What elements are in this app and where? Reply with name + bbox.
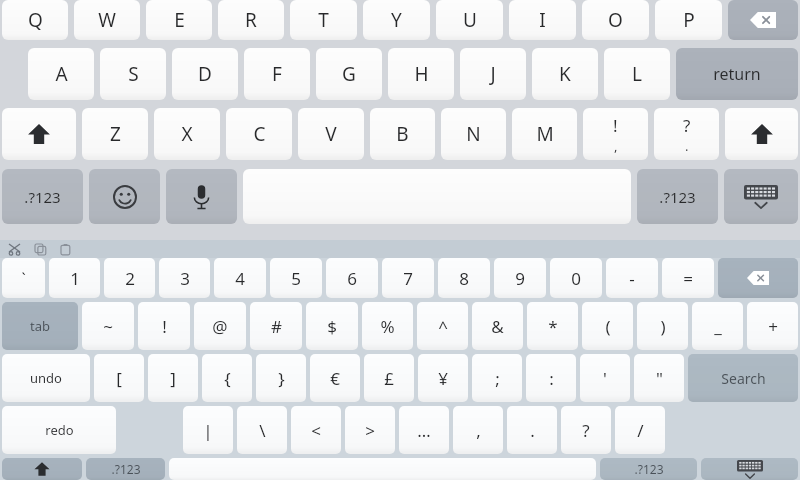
button[interactable]: T — [290, 0, 357, 40]
button[interactable]: C — [226, 108, 292, 160]
button[interactable]: * — [527, 302, 578, 350]
button[interactable]: … — [399, 406, 449, 454]
button[interactable]: / — [615, 406, 665, 454]
staticText: 4 — [235, 267, 245, 290]
button[interactable]: redo — [2, 406, 116, 454]
button[interactable]: 6 — [326, 258, 378, 298]
button[interactable]: ! — [583, 108, 648, 160]
button[interactable]: # — [250, 302, 302, 350]
button[interactable]: Copy — [32, 241, 48, 257]
button[interactable]: 1 — [49, 258, 100, 298]
button[interactable]: ? — [654, 108, 719, 160]
button[interactable]: ! — [138, 302, 190, 350]
button[interactable]: ] — [148, 354, 198, 402]
button[interactable]: > — [345, 406, 395, 454]
button[interactable]: return — [676, 48, 798, 100]
button[interactable]: € — [310, 354, 360, 402]
button[interactable]: I — [509, 0, 576, 40]
button[interactable]: P — [655, 0, 722, 40]
button[interactable]: Hide keyboard — [724, 169, 798, 224]
button[interactable]: O — [582, 0, 649, 40]
button[interactable]: G — [316, 48, 382, 100]
button[interactable]: : — [526, 354, 576, 402]
button[interactable]: £ — [364, 354, 414, 402]
button[interactable]: D — [172, 48, 238, 100]
button[interactable]: Z — [82, 108, 148, 160]
button[interactable]: Space — [243, 169, 631, 224]
button[interactable]: Q — [2, 0, 68, 40]
button[interactable]: % — [362, 302, 413, 350]
button[interactable]: { — [202, 354, 252, 402]
button[interactable]: Shift — [2, 108, 76, 160]
button[interactable]: A — [28, 48, 94, 100]
button[interactable]: - — [606, 258, 658, 298]
button[interactable]: 2 — [104, 258, 155, 298]
button[interactable]: X — [154, 108, 220, 160]
button[interactable]: L — [604, 48, 670, 100]
button[interactable]: ^ — [417, 302, 468, 350]
button[interactable]: .?123 — [86, 458, 165, 480]
button[interactable]: Shift — [725, 108, 798, 160]
button[interactable]: ` — [2, 258, 45, 298]
button[interactable]: + — [747, 302, 798, 350]
button[interactable]: ; — [472, 354, 522, 402]
button[interactable]: 3 — [159, 258, 210, 298]
button[interactable]: .?123 — [600, 458, 697, 480]
button[interactable]: S — [100, 48, 166, 100]
button[interactable]: undo — [2, 354, 90, 402]
button[interactable]: Hide keyboard — [701, 458, 798, 480]
button[interactable]: F — [244, 48, 310, 100]
button[interactable]: 9 — [494, 258, 546, 298]
button[interactable]: ~ — [82, 302, 134, 350]
button[interactable]: ) — [637, 302, 688, 350]
button[interactable]: _ — [692, 302, 743, 350]
button[interactable]: ' — [580, 354, 630, 402]
button[interactable]: \ — [237, 406, 287, 454]
button[interactable]: U — [436, 0, 503, 40]
button[interactable]: ( — [582, 302, 633, 350]
staticText: ' — [603, 367, 607, 390]
button[interactable]: .?123 — [2, 169, 83, 224]
button[interactable]: M — [512, 108, 577, 160]
button[interactable]: , — [453, 406, 503, 454]
button[interactable]: 8 — [438, 258, 490, 298]
button[interactable]: @ — [194, 302, 246, 350]
button[interactable]: H — [388, 48, 454, 100]
button[interactable]: V — [298, 108, 364, 160]
button[interactable]: 5 — [270, 258, 322, 298]
button[interactable]: J — [460, 48, 526, 100]
button[interactable]: 4 — [214, 258, 266, 298]
button[interactable]: } — [256, 354, 306, 402]
button[interactable]: & — [472, 302, 523, 350]
button[interactable]: [ — [94, 354, 144, 402]
button[interactable]: < — [291, 406, 341, 454]
staticText: B — [396, 121, 409, 147]
button[interactable]: Y — [363, 0, 430, 40]
button[interactable]: W — [74, 0, 140, 40]
button[interactable]: ? — [561, 406, 611, 454]
button[interactable]: .?123 — [637, 169, 718, 224]
button[interactable]: Emoji — [89, 169, 160, 224]
button[interactable]: N — [441, 108, 506, 160]
button[interactable]: $ — [306, 302, 358, 350]
button[interactable]: 0 — [550, 258, 602, 298]
button[interactable]: Backspace — [728, 0, 798, 40]
button[interactable]: | — [183, 406, 233, 454]
button[interactable]: " — [634, 354, 684, 402]
button[interactable]: Dictate — [166, 169, 237, 224]
button[interactable]: tab — [2, 302, 78, 350]
button[interactable]: . — [507, 406, 557, 454]
button[interactable]: Cut — [6, 241, 22, 257]
button[interactable]: K — [532, 48, 598, 100]
button[interactable]: E — [146, 0, 212, 40]
button[interactable]: Shift — [2, 458, 82, 480]
button[interactable]: Backspace — [718, 258, 798, 298]
button[interactable]: Space — [169, 458, 596, 480]
button[interactable]: B — [370, 108, 435, 160]
button[interactable]: Paste — [58, 241, 74, 257]
button[interactable]: R — [218, 0, 284, 40]
button[interactable]: = — [662, 258, 714, 298]
button[interactable]: 7 — [382, 258, 434, 298]
button[interactable]: ¥ — [418, 354, 468, 402]
button[interactable]: Search — [688, 354, 798, 402]
